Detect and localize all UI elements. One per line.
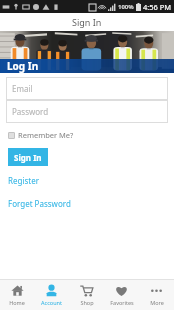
button[interactable]: Sign In — [8, 148, 48, 166]
staticText: Shop — [80, 299, 94, 306]
button[interactable]: Remember Me? — [8, 130, 74, 140]
staticText: Email — [12, 83, 33, 94]
button[interactable]: Home — [0, 280, 34, 310]
staticText: Register — [8, 175, 40, 186]
button[interactable]: Shop — [69, 280, 104, 310]
staticText: Sign In — [14, 152, 42, 163]
staticText: Password — [12, 106, 49, 117]
button[interactable]: Email — [6, 77, 168, 100]
button[interactable]: More — [139, 280, 174, 310]
staticText: Log In — [7, 59, 39, 73]
staticText: More — [150, 299, 164, 306]
staticText: Home — [9, 299, 25, 306]
staticText: Account — [41, 299, 62, 306]
button[interactable]: Password — [6, 100, 168, 123]
button[interactable]: Favorites — [104, 280, 139, 310]
staticText: Forget Password — [8, 198, 71, 209]
staticText: Sign In — [72, 16, 102, 28]
staticText: Remember Me? — [18, 130, 74, 140]
button[interactable]: Forget Password — [8, 198, 71, 209]
staticText: Favorites — [110, 299, 134, 306]
button[interactable]: Register — [8, 175, 40, 186]
staticText: 100% — [118, 3, 134, 11]
button[interactable]: Account — [34, 280, 69, 310]
staticText: 4:56 PM — [143, 2, 172, 12]
